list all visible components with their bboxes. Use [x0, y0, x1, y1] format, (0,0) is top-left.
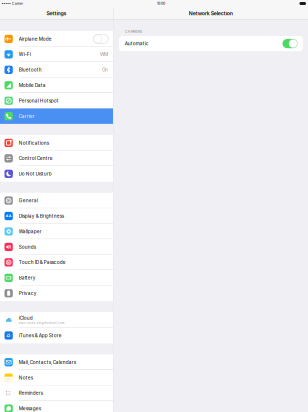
staticText: Battery	[19, 275, 36, 281]
button[interactable]: Notes	[0, 370, 113, 385]
staticText: iCloud	[19, 315, 33, 321]
button[interactable]: Battery	[0, 270, 113, 285]
staticText: Display & Brightness	[19, 213, 64, 219]
staticText: 10:00	[157, 1, 165, 6]
staticText: Do Not Disturb	[19, 171, 52, 177]
staticText: Automatic	[125, 41, 149, 46]
staticText: Mobile Data	[19, 82, 46, 88]
button[interactable]: Wallpaper	[0, 224, 113, 239]
staticText: On	[102, 67, 108, 73]
staticText: Bluetooth	[19, 67, 42, 73]
button[interactable]: Reminders	[0, 385, 113, 401]
button[interactable]: General	[0, 193, 113, 208]
staticText: Touch ID & Passcode	[19, 259, 66, 265]
button[interactable]: Mobile Data	[0, 77, 113, 93]
staticText: WM	[100, 52, 108, 57]
button[interactable]: AA	[0, 208, 113, 224]
button[interactable]: Sounds	[0, 239, 113, 255]
staticText: Wi-Fi	[19, 51, 31, 57]
button[interactable]: Carrier	[0, 108, 113, 124]
button[interactable]: Bluetooth	[0, 62, 113, 77]
button[interactable]: Automatic	[119, 36, 303, 51]
staticText: Personal Hotspot	[19, 98, 59, 104]
staticText: Mail, Contacts, Calendars	[19, 359, 76, 365]
staticText: Messages	[19, 406, 41, 411]
staticText: Settings	[46, 10, 66, 17]
button[interactable]: Wi-Fi	[0, 47, 113, 62]
staticText: Notes	[19, 375, 33, 380]
staticText: Carrier	[19, 113, 35, 119]
button[interactable]: iCloud	[0, 312, 113, 328]
staticText: Control Centre	[19, 155, 53, 161]
staticText: AA	[6, 214, 12, 218]
button[interactable]: Notifications	[0, 135, 113, 151]
button[interactable]: Messages	[0, 401, 113, 412]
staticText: alan.jones.am@hotmail.com	[19, 321, 65, 325]
staticText: CARRIERS	[125, 29, 142, 34]
button[interactable]: Airplane Mode	[0, 31, 113, 47]
staticText: General	[19, 198, 38, 203]
staticText: Notifications	[19, 140, 49, 146]
staticText: Reminders	[19, 390, 43, 396]
button[interactable]: Touch ID & Passcode	[0, 255, 113, 270]
button[interactable]: Personal Hotspot	[0, 93, 113, 108]
staticText: Wallpaper	[19, 229, 42, 234]
staticText: Sounds	[19, 244, 36, 250]
button[interactable]: Privacy	[0, 286, 113, 301]
staticText: Carrier	[12, 1, 23, 6]
staticText: Privacy	[19, 290, 37, 296]
button[interactable]: iTunes & App Store	[0, 328, 113, 343]
button[interactable]: Control Centre	[0, 151, 113, 166]
staticText: Airplane Mode	[19, 36, 52, 42]
staticText: Network Selection	[189, 10, 233, 17]
staticText: iTunes & App Store	[19, 333, 62, 338]
button[interactable]: Do Not Disturb	[0, 166, 113, 181]
button[interactable]: Mail, Contacts, Calendars	[0, 354, 113, 370]
